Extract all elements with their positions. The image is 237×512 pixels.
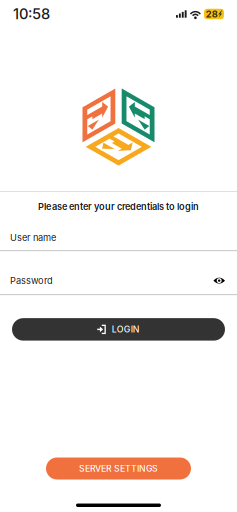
- button[interactable]: SERVER SETTINGS: [46, 457, 191, 479]
- staticText: 28: [206, 8, 218, 20]
- button[interactable]: LOGIN: [12, 318, 225, 341]
- button[interactable]: Show password: [211, 276, 227, 286]
- staticText: 10:58: [13, 5, 50, 23]
- staticText: Please enter your credentials to login: [38, 201, 199, 212]
- staticText: SERVER SETTINGS: [79, 463, 158, 474]
- staticText: User name: [10, 232, 56, 243]
- staticText: Password: [10, 275, 53, 286]
- staticText: LOGIN: [112, 324, 140, 335]
